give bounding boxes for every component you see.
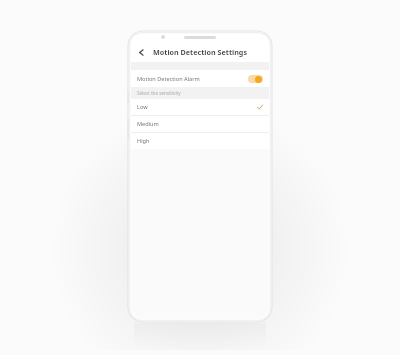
staticText: Low [137,103,148,111]
staticText: Motion Detection Settings [153,47,248,57]
staticText: Motion Detection Alarm [137,75,200,83]
staticText: Medium [137,120,159,128]
button[interactable]: High [131,133,269,149]
staticText: High [137,137,150,145]
button[interactable]: Low [131,99,269,115]
button[interactable]: Back [134,43,148,61]
button[interactable]: Motion Detection Alarm toggle [248,75,263,83]
staticText: Select the sensitivity [137,90,181,96]
button[interactable]: Medium [131,116,269,132]
button[interactable]: Motion Detection Alarm [131,70,269,87]
